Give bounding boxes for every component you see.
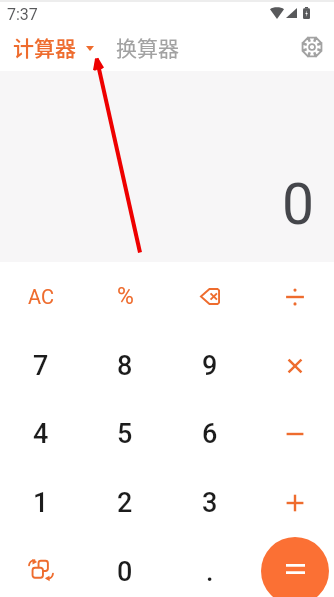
button[interactable]: 7 bbox=[0, 331, 83, 400]
staticText: % bbox=[117, 283, 134, 310]
button[interactable]: . bbox=[168, 537, 252, 597]
button[interactable]: Multiply bbox=[253, 331, 334, 400]
staticText: 9 bbox=[202, 350, 218, 382]
button[interactable]: 5 bbox=[83, 399, 167, 468]
other: Plus bbox=[285, 493, 305, 513]
staticText: 2 bbox=[117, 487, 133, 519]
button[interactable]: % bbox=[83, 262, 167, 331]
button[interactable]: 换算器 bbox=[116, 32, 179, 62]
button[interactable]: Unit converter bbox=[0, 537, 83, 597]
button[interactable]: 计算器 bbox=[13, 32, 94, 62]
staticText: 8 bbox=[117, 350, 133, 382]
staticText: 换算器 bbox=[116, 32, 179, 62]
button[interactable]: 6 bbox=[168, 399, 252, 468]
button[interactable]: Equals bbox=[253, 537, 334, 597]
button[interactable]: Settings bbox=[297, 32, 327, 62]
staticText: . bbox=[206, 556, 214, 588]
staticText: 4 bbox=[33, 418, 49, 450]
staticText: 6 bbox=[202, 418, 218, 450]
staticText: 0 bbox=[282, 171, 315, 238]
button[interactable]: 0 bbox=[83, 537, 167, 597]
button[interactable]: AC bbox=[0, 262, 83, 331]
button[interactable]: Plus bbox=[253, 468, 334, 537]
button[interactable]: Divide bbox=[253, 262, 334, 331]
staticText: 7:37 bbox=[7, 5, 38, 24]
staticText: 5 bbox=[117, 418, 133, 450]
button[interactable]: 3 bbox=[168, 468, 252, 537]
staticText: 0 bbox=[117, 556, 133, 588]
other: Unit converter bbox=[28, 561, 54, 582]
staticText: 3 bbox=[202, 487, 218, 519]
button[interactable]: 1 bbox=[0, 468, 83, 537]
other: Backspace bbox=[200, 288, 220, 305]
staticText: 1 bbox=[33, 487, 49, 519]
staticText: 计算器 bbox=[13, 32, 76, 62]
staticText: 7 bbox=[33, 350, 49, 382]
button[interactable]: 4 bbox=[0, 399, 83, 468]
other: Multiply bbox=[285, 356, 305, 376]
other: Divide bbox=[285, 287, 305, 307]
other: Minus bbox=[285, 424, 305, 444]
button[interactable]: 9 bbox=[168, 331, 252, 400]
staticText: AC bbox=[28, 285, 54, 308]
button[interactable]: Backspace bbox=[168, 262, 252, 331]
button[interactable]: 8 bbox=[83, 331, 167, 400]
button[interactable]: 2 bbox=[83, 468, 167, 537]
button[interactable]: Equals bbox=[261, 537, 329, 597]
button[interactable]: Minus bbox=[253, 399, 334, 468]
